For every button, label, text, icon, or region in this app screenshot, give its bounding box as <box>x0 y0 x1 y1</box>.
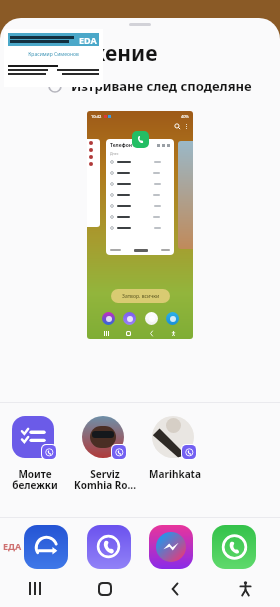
staticText: Serviz Komhia Ro... <box>72 467 138 492</box>
button[interactable]: Back <box>140 570 210 607</box>
staticText: Моите бележки <box>2 467 68 492</box>
staticText: 10:42 <box>91 114 102 119</box>
staticText: Днес <box>110 151 119 156</box>
button[interactable]: Изтриване след споделяне <box>0 75 280 103</box>
staticText: Затвор. всички <box>122 293 160 300</box>
staticText: Приложение <box>18 39 158 68</box>
button[interactable]: Home <box>70 570 140 607</box>
staticText: ЕДА <box>3 540 22 552</box>
button[interactable]: Serviz Komhia Ro... <box>70 416 140 517</box>
staticText: EDA <box>79 34 97 46</box>
button[interactable]: Viber <box>87 525 131 569</box>
staticText: Красимир Симеонов <box>8 51 99 58</box>
button[interactable]: Accessibility <box>210 570 280 607</box>
button[interactable]: WhatsApp <box>212 525 256 569</box>
button[interactable]: Messenger <box>149 525 193 569</box>
button[interactable]: Моите бележки <box>0 416 70 517</box>
button[interactable]: Marihkata <box>140 416 210 517</box>
staticText: Телефон <box>110 142 133 149</box>
staticText: Marihkata <box>142 467 208 481</box>
button[interactable]: Recent apps <box>0 570 70 607</box>
staticText: Изтриване след споделяне <box>71 77 252 95</box>
button[interactable]: Screenshot preview <box>87 111 193 339</box>
staticText: 40% <box>181 114 189 119</box>
button[interactable]: Quick Share <box>24 525 68 569</box>
